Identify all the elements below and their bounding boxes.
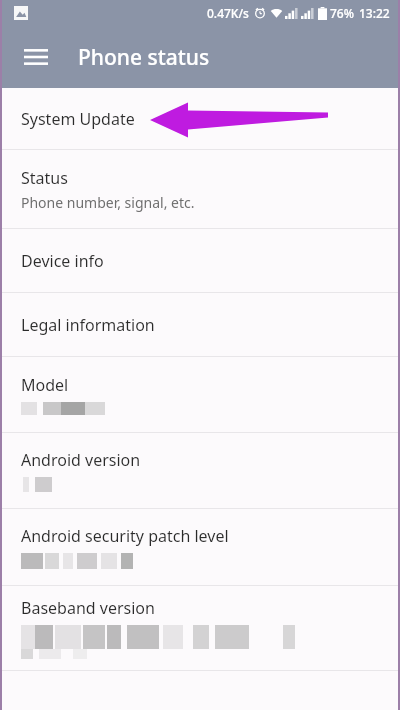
button[interactable]: Status bbox=[2, 150, 398, 228]
button[interactable]: Android security patch level bbox=[2, 509, 398, 585]
button[interactable]: Baseband version bbox=[2, 586, 398, 670]
staticText: Android version bbox=[21, 449, 141, 471]
staticText: Device info bbox=[21, 250, 104, 272]
staticText: Status bbox=[21, 167, 68, 189]
staticText: 0.47K/s bbox=[207, 5, 249, 21]
staticText: 76% bbox=[330, 5, 354, 21]
button[interactable]: Open navigation menu bbox=[14, 35, 58, 79]
button[interactable]: Android version bbox=[2, 433, 398, 508]
staticText: 13:22 bbox=[359, 5, 390, 21]
button[interactable]: Legal information bbox=[2, 293, 398, 356]
staticText: Phone number, signal, etc. bbox=[21, 193, 195, 212]
button[interactable]: Device info bbox=[2, 229, 398, 292]
staticText: System Update bbox=[21, 108, 135, 130]
staticText: Legal information bbox=[21, 314, 155, 336]
button[interactable]: System Update bbox=[2, 88, 398, 149]
staticText: Baseband version bbox=[21, 597, 155, 619]
staticText: Android security patch level bbox=[21, 525, 229, 547]
staticText: Phone status bbox=[78, 43, 210, 72]
button[interactable]: Model bbox=[2, 357, 398, 432]
staticText: Model bbox=[21, 374, 69, 396]
